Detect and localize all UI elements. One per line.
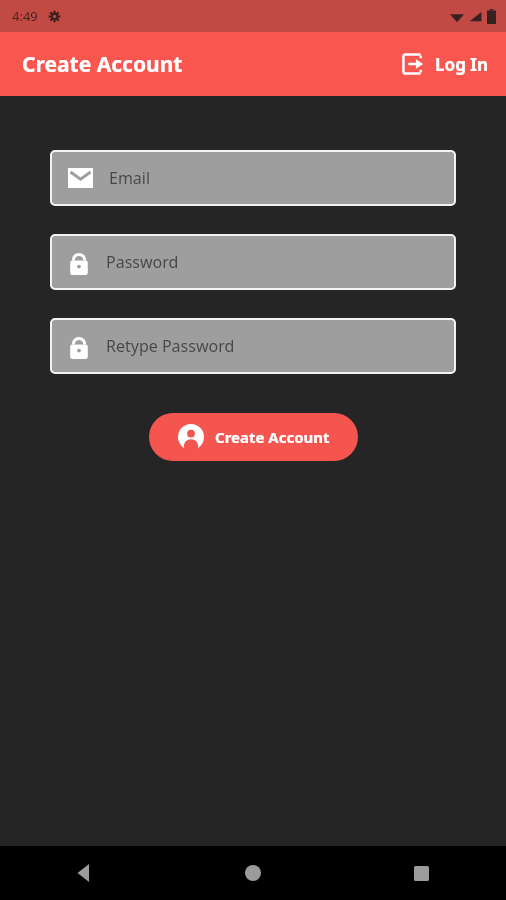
staticText: Log In bbox=[435, 53, 488, 76]
staticText: Password bbox=[106, 251, 179, 273]
staticText: Create Account bbox=[22, 50, 183, 79]
button[interactable]: Back bbox=[0, 846, 168, 900]
staticText: Create Account bbox=[215, 427, 330, 447]
staticText: 4:49 bbox=[12, 7, 38, 25]
staticText: Retype Password bbox=[106, 335, 235, 357]
button[interactable]: Retype Password bbox=[50, 318, 456, 374]
button[interactable]: Email bbox=[50, 150, 456, 206]
button[interactable]: Password bbox=[50, 234, 456, 290]
button[interactable]: Log In bbox=[398, 46, 492, 82]
button[interactable]: Create Account bbox=[149, 413, 358, 461]
staticText: Email bbox=[109, 167, 151, 189]
button[interactable]: Recent apps bbox=[337, 846, 506, 900]
button[interactable]: Home bbox=[168, 846, 337, 900]
